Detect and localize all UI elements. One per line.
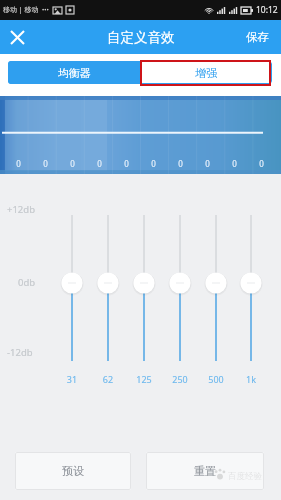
staticText: 0 bbox=[221, 158, 248, 169]
staticText: ••• bbox=[42, 6, 49, 14]
button[interactable]: Close bbox=[0, 20, 34, 54]
staticText: 移动 | 移动 bbox=[3, 5, 39, 15]
staticText: 0 bbox=[194, 158, 221, 169]
staticText: 1k bbox=[239, 373, 263, 385]
staticText: 10:12 bbox=[256, 4, 278, 16]
button[interactable]: Band 500 bbox=[203, 213, 229, 363]
staticText: 500 bbox=[204, 373, 228, 385]
staticText: 0 bbox=[140, 158, 167, 169]
staticText: 0 bbox=[167, 158, 194, 169]
button[interactable]: Band 1k bbox=[238, 213, 264, 363]
staticText: 62 bbox=[96, 373, 120, 385]
staticText: 预设 bbox=[62, 464, 84, 478]
staticText: 0 bbox=[86, 158, 113, 169]
staticText: 增强 bbox=[195, 66, 217, 80]
button[interactable]: Band 62 bbox=[95, 213, 121, 363]
staticText: 保存 bbox=[246, 30, 269, 44]
staticText: -12db bbox=[7, 346, 33, 359]
staticText: 250 bbox=[168, 373, 192, 385]
button[interactable]: 预设 bbox=[15, 452, 131, 490]
button[interactable]: Band 31 bbox=[59, 213, 85, 363]
staticText: 125 bbox=[132, 373, 156, 385]
button[interactable]: Band 250 bbox=[167, 213, 193, 363]
button[interactable]: 增强 bbox=[140, 61, 272, 84]
staticText: 重置 bbox=[194, 464, 216, 478]
staticText: 0 bbox=[248, 158, 275, 169]
button[interactable]: 重置 bbox=[146, 452, 264, 490]
button[interactable]: 均衡器 bbox=[8, 61, 140, 84]
staticText: 均衡器 bbox=[58, 66, 91, 80]
button[interactable]: Band 125 bbox=[131, 213, 157, 363]
staticText: +12db bbox=[7, 203, 35, 216]
staticText: 0 bbox=[5, 158, 32, 169]
staticText: 0 bbox=[32, 158, 59, 169]
staticText: 0db bbox=[18, 276, 36, 289]
button[interactable]: 保存 bbox=[234, 20, 281, 54]
staticText: 0 bbox=[59, 158, 86, 169]
staticText: 百度经验 bbox=[228, 471, 262, 482]
staticText: 0 bbox=[113, 158, 140, 169]
staticText: 自定义音效 bbox=[107, 29, 175, 46]
staticText: 31 bbox=[60, 373, 84, 385]
